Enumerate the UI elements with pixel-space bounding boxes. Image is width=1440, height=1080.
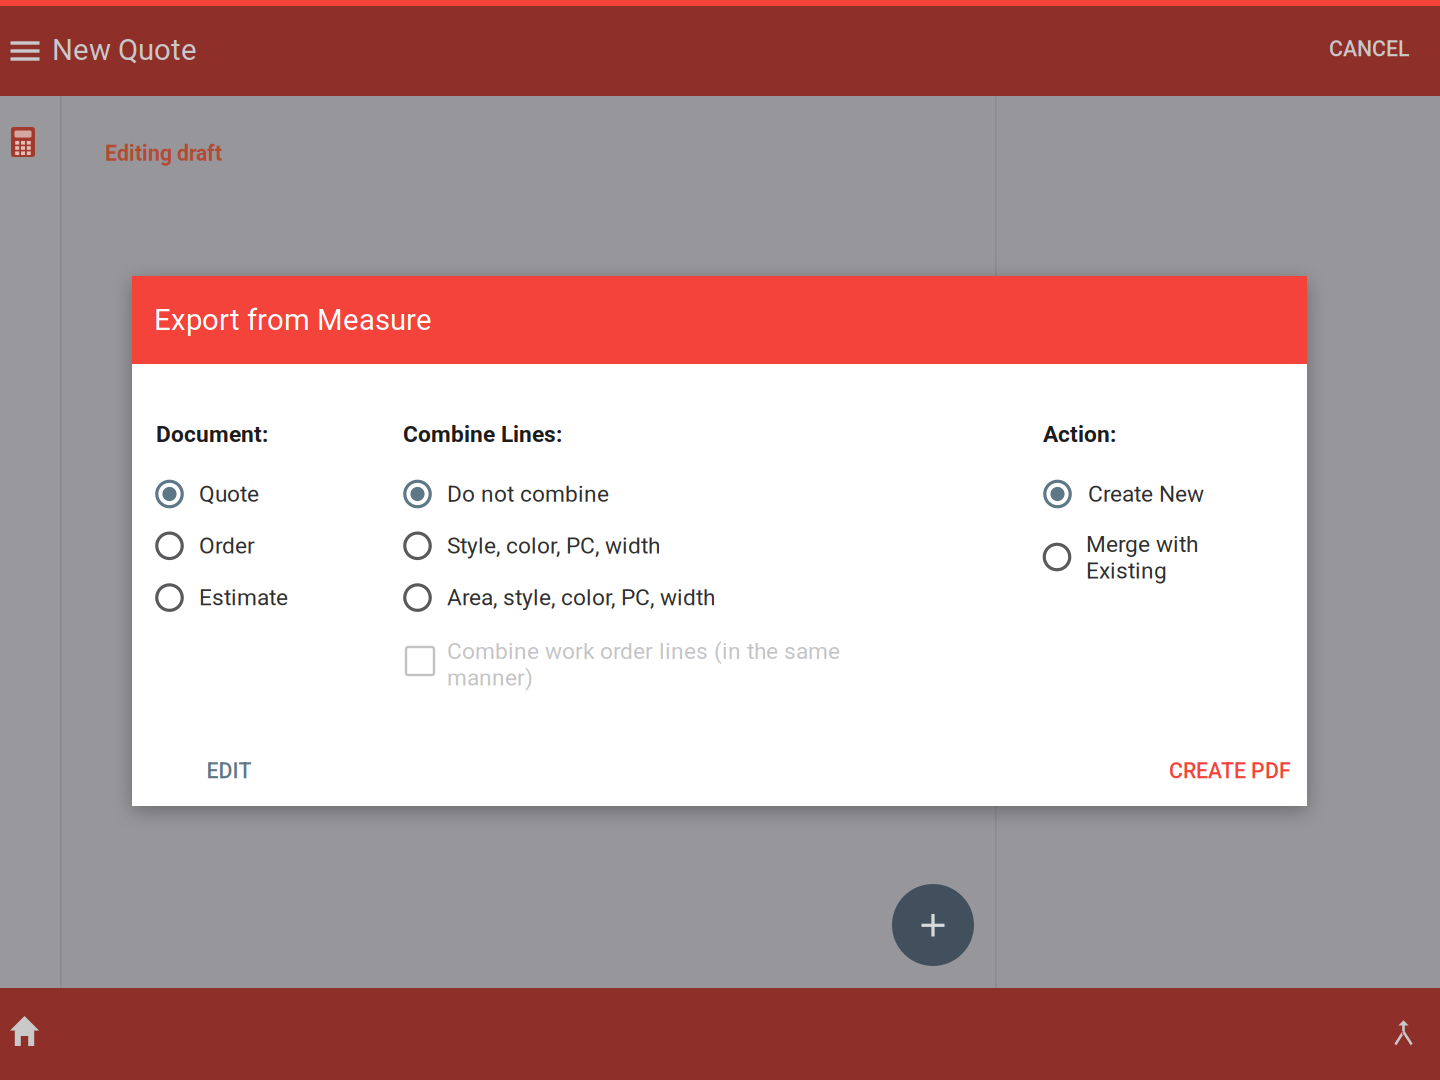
- staticText: Editing draft: [105, 141, 222, 166]
- button[interactable]: Open navigation menu: [0, 6, 50, 96]
- button[interactable]: Combine work order lines (in the same ma…: [405, 635, 853, 703]
- button[interactable]: EDIT: [190, 745, 268, 797]
- staticText: New Quote: [52, 33, 197, 67]
- button[interactable]: Share: [1367, 988, 1440, 1080]
- button[interactable]: Merge with Existing: [1043, 527, 1223, 591]
- staticText: Export from Measure: [154, 303, 432, 337]
- button[interactable]: Home: [0, 988, 49, 1080]
- button[interactable]: Create New: [1043, 472, 1263, 516]
- button[interactable]: Area, style, color, PC, width: [403, 576, 733, 620]
- button[interactable]: CANCEL: [1313, 23, 1426, 79]
- staticText: Style, color, PC, width: [447, 532, 660, 559]
- staticText: Combine work order lines (in the same ma…: [447, 638, 840, 691]
- staticText: Create New: [1088, 481, 1204, 507]
- button[interactable]: Style, color, PC, width: [403, 524, 733, 568]
- button[interactable]: Order: [155, 524, 345, 568]
- staticText: Do not combine: [447, 481, 609, 507]
- staticText: Estimate: [199, 584, 288, 611]
- staticText: Area, style, color, PC, width: [447, 584, 715, 611]
- button[interactable]: Add line item: [892, 884, 974, 966]
- staticText: Quote: [199, 481, 259, 507]
- button[interactable]: Measurement calculator: [0, 119, 46, 165]
- staticText: CREATE PDF: [1169, 758, 1291, 783]
- staticText: EDIT: [206, 758, 251, 783]
- button[interactable]: Quote: [155, 472, 345, 516]
- staticText: Order: [199, 532, 255, 559]
- staticText: Merge with Existing: [1086, 531, 1198, 584]
- button[interactable]: CREATE PDF: [1154, 745, 1306, 797]
- button[interactable]: Estimate: [155, 576, 345, 620]
- staticText: Combine Lines:: [403, 421, 562, 448]
- button[interactable]: Do not combine: [403, 472, 733, 516]
- staticText: Action:: [1043, 421, 1116, 448]
- staticText: CANCEL: [1329, 36, 1410, 61]
- staticText: Document:: [156, 421, 268, 448]
